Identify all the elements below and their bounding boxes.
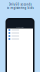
staticText: to registering kids	[6, 6, 33, 10]
staticText: Registration	[16, 26, 24, 28]
staticText: Only 60 seconds	[8, 3, 31, 6]
